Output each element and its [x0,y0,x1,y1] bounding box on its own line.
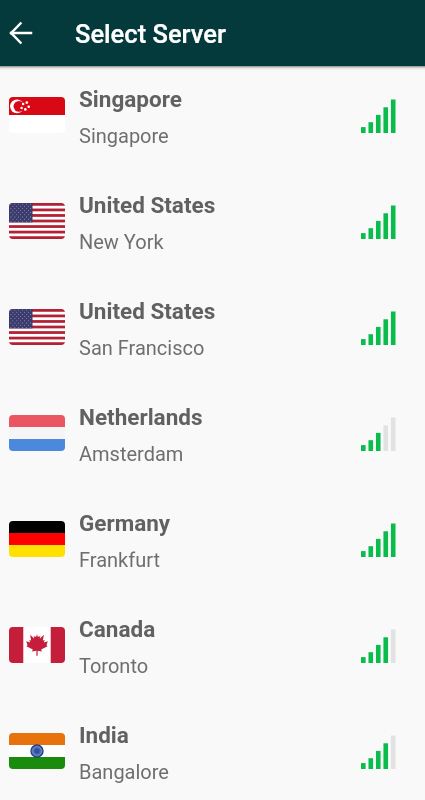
staticText: Canada [79,616,156,642]
button[interactable]: Singapore [0,71,425,177]
button[interactable]: Germany [0,495,425,601]
staticText: Netherlands [79,404,203,430]
staticText: United States [79,192,216,218]
button[interactable]: Canada [0,601,425,707]
staticText: Singapore [79,124,169,147]
staticText: Bangalore [79,760,169,783]
staticText: Germany [79,510,171,536]
button[interactable]: United States [0,283,425,389]
staticText: India [79,722,129,748]
button[interactable]: Back [0,11,42,55]
staticText: Singapore [79,86,182,112]
staticText: Frankfurt [79,548,161,571]
button[interactable]: United States [0,177,425,283]
staticText: Amsterdam [79,442,184,465]
button[interactable]: Netherlands [0,389,425,495]
button[interactable]: India [0,707,425,800]
staticText: San Francisco [79,336,205,359]
staticText: New York [79,230,164,253]
staticText: Toronto [79,654,149,677]
staticText: Select Server [75,19,226,49]
staticText: United States [79,298,216,324]
